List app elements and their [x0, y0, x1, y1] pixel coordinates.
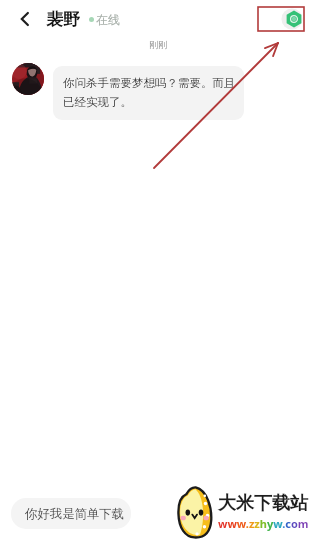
button[interactable]: Menu [281, 6, 307, 32]
button[interactable]: 你好我是简单下载 [11, 498, 131, 529]
staticText: 你好我是简单下载 [25, 506, 125, 522]
staticText: 你问杀手需要梦想吗？需要。而且已经实现了。 [63, 76, 237, 110]
staticText: 裴野 [46, 9, 80, 30]
button[interactable]: 你问杀手需要梦想吗？需要。而且已经实现了。 [53, 66, 244, 120]
button[interactable]: Back [13, 7, 37, 31]
staticText: 大米下载站 [218, 492, 308, 515]
staticText: 刚刚 [149, 39, 167, 50]
staticText: 在线 [96, 12, 120, 27]
staticText: www.zzhyw.com [218, 516, 309, 531]
